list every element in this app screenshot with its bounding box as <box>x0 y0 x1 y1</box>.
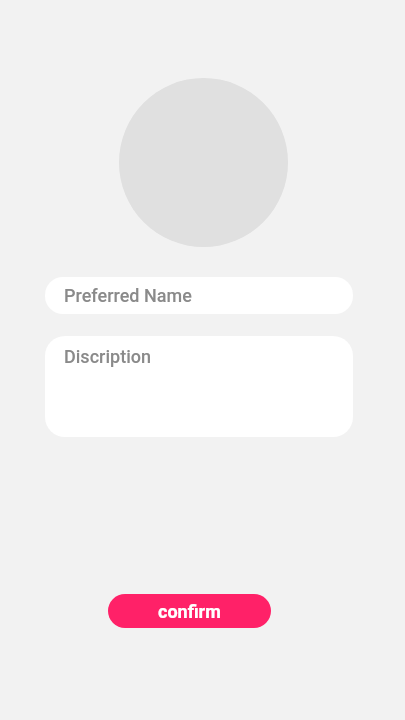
button[interactable]: Discription <box>45 336 353 437</box>
button[interactable]: Choose profile photo <box>119 78 288 247</box>
button[interactable]: confirm <box>108 594 271 628</box>
button[interactable]: Preferred Name <box>45 277 353 314</box>
staticText: confirm <box>158 601 221 622</box>
staticText: Discription <box>64 346 152 367</box>
staticText: Preferred Name <box>64 285 192 306</box>
